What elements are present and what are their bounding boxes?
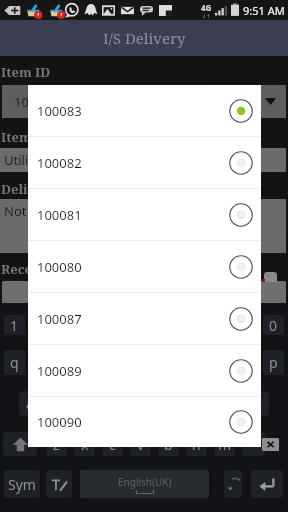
button[interactable]: s: [47, 391, 68, 416]
staticText: Not Delivered: [4, 202, 88, 220]
staticText: 4G: [201, 2, 212, 13]
staticText: a: [26, 394, 34, 413]
staticText: Received By: [1, 260, 80, 274]
button[interactable]: 100081: [28, 189, 261, 240]
button[interactable]: 100089: [28, 345, 261, 396]
staticText: v: [137, 435, 145, 454]
staticText: Utility Knife: [4, 151, 75, 169]
button[interactable]: 0: [263, 315, 284, 335]
other: Enter: [257, 474, 277, 494]
button[interactable]: j: [190, 391, 211, 416]
staticText: o: [240, 353, 249, 372]
button[interactable]: Handwriting input: [46, 470, 72, 498]
button[interactable]: [242, 432, 265, 456]
button[interactable]: l: [248, 391, 269, 416]
button[interactable]: o: [234, 350, 255, 375]
button[interactable]: x: [74, 432, 95, 456]
staticText: 100089: [37, 362, 82, 380]
button[interactable]: f: [103, 391, 124, 416]
button[interactable]: b: [158, 432, 179, 456]
button[interactable]: 1: [4, 315, 25, 335]
staticText: d: [81, 394, 90, 413]
button[interactable]: 100087: [28, 293, 261, 344]
button[interactable]: Enter: [251, 470, 283, 498]
button[interactable]: English(UK): [80, 470, 209, 498]
button[interactable]: q: [4, 350, 25, 375]
button[interactable]: Backspace: [262, 438, 279, 451]
staticText: 100080: [37, 258, 82, 276]
staticText: h: [167, 394, 176, 413]
other: Period and symbols: [224, 475, 242, 493]
staticText: k: [226, 394, 234, 413]
button[interactable]: e: [60, 350, 81, 375]
button[interactable]: a: [19, 391, 40, 416]
button[interactable]: g: [132, 391, 153, 416]
button[interactable]: k: [219, 391, 240, 416]
staticText: 100082: [37, 154, 82, 172]
staticText: z: [53, 435, 60, 454]
button[interactable]: 9: [234, 315, 255, 335]
button[interactable]: 100090: [28, 397, 261, 447]
staticText: 0: [269, 316, 278, 335]
staticText: p: [269, 353, 278, 372]
button[interactable]: c: [102, 432, 123, 456]
staticText: m: [218, 435, 232, 454]
other: Handwriting input: [50, 475, 68, 493]
button[interactable]: p: [263, 350, 284, 375]
button[interactable]: z: [46, 432, 67, 456]
staticText: x: [81, 435, 89, 454]
button[interactable]: v: [130, 432, 151, 456]
button[interactable]: 100083: [28, 85, 261, 136]
staticText: g: [138, 394, 147, 413]
staticText: 100087: [37, 310, 82, 328]
button[interactable]: n: [186, 432, 207, 456]
staticText: 9:51 AM: [243, 3, 285, 18]
staticText: s: [54, 394, 61, 413]
button[interactable]: h: [161, 391, 182, 416]
staticText: English(UK): [118, 475, 172, 489]
button[interactable]: Sym: [4, 470, 40, 498]
button[interactable]: w: [32, 350, 53, 375]
staticText: Item Description: [1, 128, 112, 142]
staticText: 1: [10, 316, 19, 335]
staticText: 9: [240, 316, 249, 335]
staticText: Sym: [8, 475, 36, 494]
button[interactable]: 100082: [28, 137, 261, 188]
staticText: 2: [38, 316, 47, 335]
other: Shift: [12, 436, 29, 453]
staticText: 100083: [14, 93, 59, 111]
staticText: I/S Delivery: [103, 28, 186, 48]
button[interactable]: d: [75, 391, 96, 416]
staticText: Item ID: [1, 63, 51, 77]
button[interactable]: 3: [60, 315, 81, 335]
button[interactable]: m: [214, 432, 235, 456]
staticText: q: [10, 353, 19, 372]
staticText: f: [111, 394, 116, 413]
staticText: e: [67, 353, 75, 372]
button[interactable]: Period and symbols: [224, 470, 242, 498]
staticText: 100083: [37, 102, 82, 120]
staticText: w: [37, 353, 49, 372]
button[interactable]: Shift: [3, 432, 37, 456]
staticText: 100081: [37, 206, 82, 224]
button[interactable]: 100080: [28, 241, 261, 292]
button[interactable]: 2: [32, 315, 53, 335]
